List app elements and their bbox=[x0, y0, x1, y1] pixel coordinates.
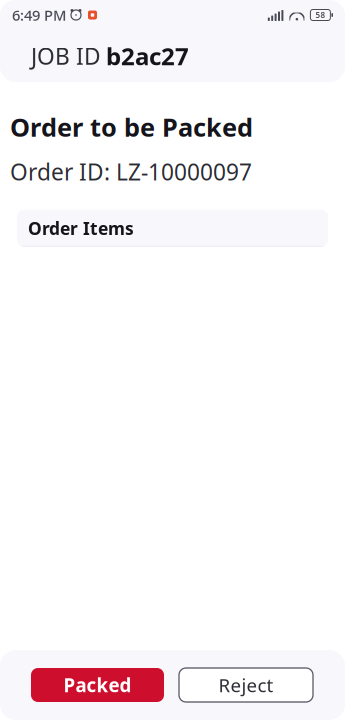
staticText: 58 bbox=[315, 10, 325, 20]
staticText: 6:49 PM bbox=[12, 5, 66, 25]
staticText: Order to be Packed bbox=[10, 110, 253, 144]
staticText: Order ID: LZ-10000097 bbox=[10, 157, 252, 187]
staticText: Reject bbox=[218, 673, 273, 697]
staticText: 58 bbox=[315, 10, 325, 20]
staticText: 6:49 PM bbox=[12, 5, 66, 25]
staticText: Packed bbox=[63, 673, 131, 697]
staticText: b2ac27 bbox=[106, 40, 189, 72]
staticText: JOB ID bbox=[31, 41, 101, 71]
staticText: Order Items bbox=[28, 217, 134, 240]
button[interactable]: Order Items bbox=[17, 210, 328, 247]
button[interactable]: Packed bbox=[31, 668, 164, 702]
staticText: b2ac27 bbox=[106, 40, 189, 72]
button[interactable]: Reject bbox=[179, 668, 313, 702]
staticText: JOB ID bbox=[31, 41, 101, 71]
